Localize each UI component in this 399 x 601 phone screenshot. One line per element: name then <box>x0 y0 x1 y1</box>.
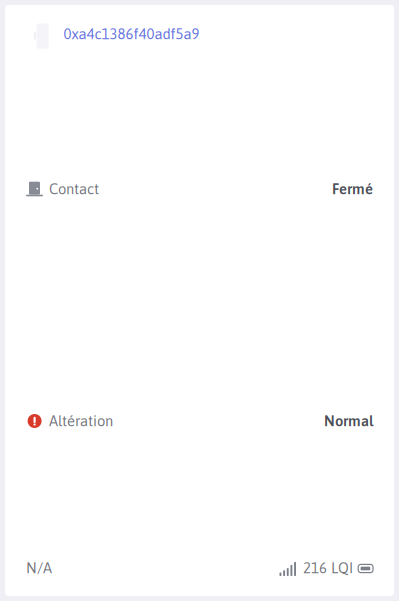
staticText: 0xa4c1386f40adf5a9 <box>63 25 199 42</box>
button[interactable]: Contact <box>5 178 394 200</box>
staticText: Altération <box>49 412 113 429</box>
staticText: N/A <box>26 559 52 576</box>
button[interactable]: Device 0xa4c1386f40adf5a9 <box>5 23 394 45</box>
staticText: Fermé <box>332 180 373 197</box>
staticText: Normal <box>324 412 373 429</box>
staticText: Contact <box>49 180 99 197</box>
button[interactable]: Altération <box>5 410 394 432</box>
staticText: 216 LQI <box>303 559 353 576</box>
